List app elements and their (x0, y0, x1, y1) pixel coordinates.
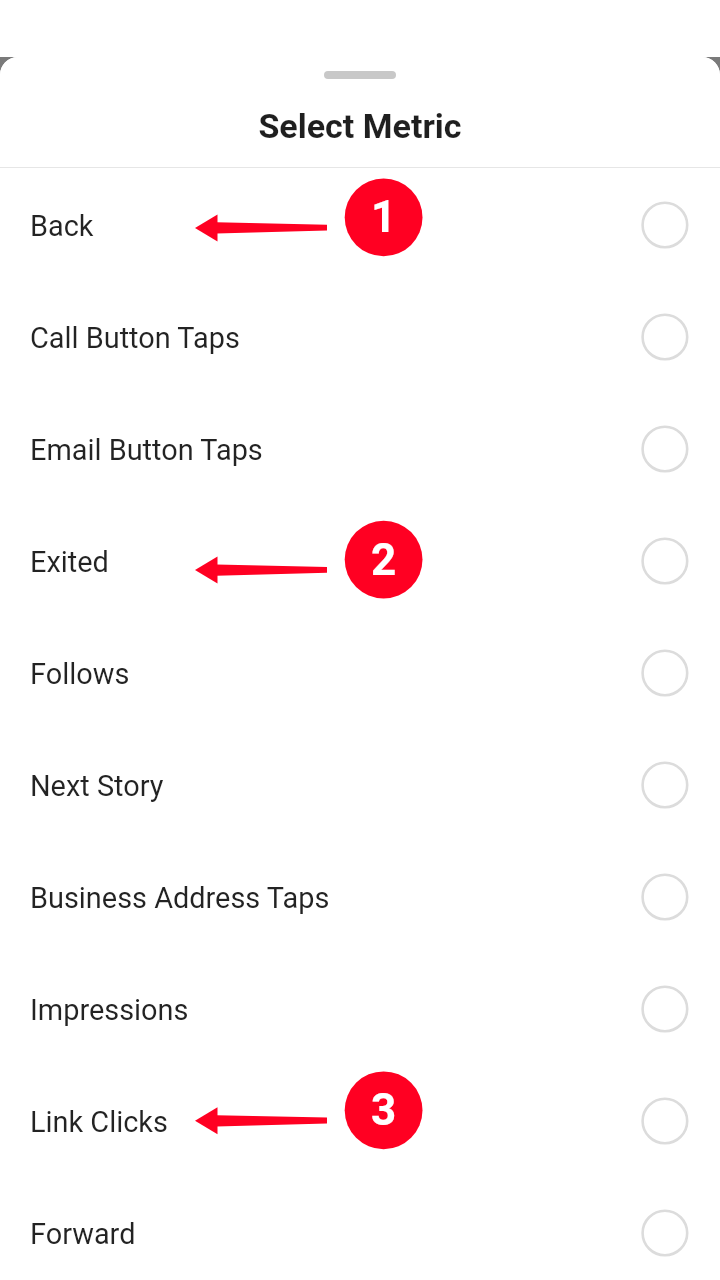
staticText: Exited (30, 545, 109, 579)
other: Select Follows (640, 648, 688, 696)
button[interactable]: Link Clicks (0, 1064, 720, 1176)
staticText: Back (30, 209, 94, 243)
other: Select Call Button Taps (640, 312, 688, 360)
button[interactable]: Exited (0, 504, 720, 616)
staticText: 3 (371, 1084, 397, 1136)
other: Select Forward (640, 1208, 688, 1256)
staticText: Next Story (30, 769, 164, 803)
other: Select Back (640, 200, 688, 248)
other: Select Email Button Taps (640, 424, 688, 472)
button[interactable]: Follows (0, 616, 720, 728)
other: Select Exited (640, 536, 688, 584)
staticText: Email Button Taps (30, 433, 263, 467)
other: Select Link Clicks (640, 1096, 688, 1144)
button[interactable]: Call Button Taps (0, 280, 720, 392)
button[interactable]: Forward (0, 1176, 720, 1280)
staticText: Select Metric (258, 106, 462, 146)
staticText: 2 (371, 534, 397, 586)
staticText: Follows (30, 657, 130, 691)
staticText: 1 (371, 191, 397, 243)
button[interactable]: Next Story (0, 728, 720, 840)
other: Select Next Story (640, 760, 688, 808)
staticText: Business Address Taps (30, 881, 330, 915)
staticText: Call Button Taps (30, 321, 240, 355)
button[interactable]: Back (0, 168, 720, 280)
button[interactable]: Email Button Taps (0, 392, 720, 504)
button[interactable]: Impressions (0, 952, 720, 1064)
staticText: Impressions (30, 993, 189, 1027)
staticText: Link Clicks (30, 1105, 168, 1139)
other: Select Business Address Taps (640, 872, 688, 920)
other: Select Impressions (640, 984, 688, 1032)
button[interactable]: Business Address Taps (0, 840, 720, 952)
staticText: Forward (30, 1217, 136, 1251)
button[interactable]: Drag handle (324, 71, 396, 79)
